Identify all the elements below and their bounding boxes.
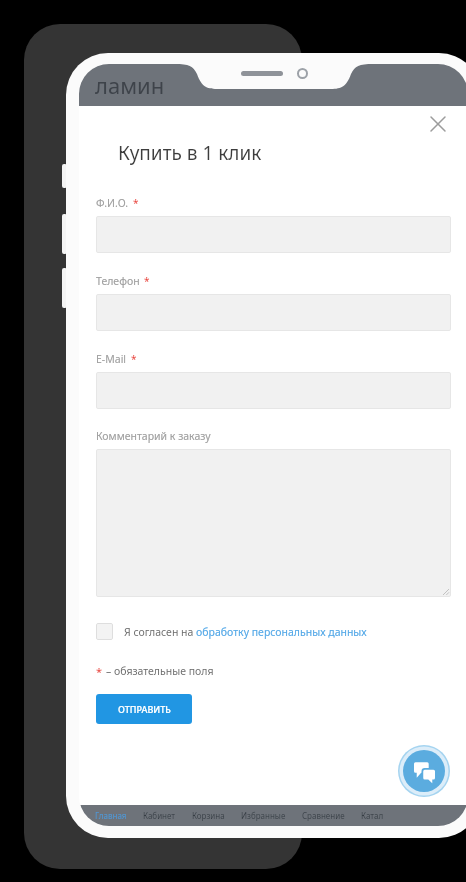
staticText: Корзина xyxy=(192,810,225,821)
button[interactable]: Корзина xyxy=(192,805,225,826)
staticText: E-Mail xyxy=(96,352,127,366)
staticText: Кабинет xyxy=(143,810,176,821)
staticText: Главная xyxy=(95,810,127,821)
staticText: Телефон xyxy=(96,274,140,288)
staticText: Купить в 1 клик xyxy=(118,140,262,166)
staticText: * xyxy=(131,352,137,366)
button[interactable]: Открыть чат xyxy=(398,745,450,797)
staticText: – обязательные поля xyxy=(106,664,214,678)
button[interactable]: Главная xyxy=(95,805,127,826)
staticText: Я согласен на обработку персональных дан… xyxy=(124,625,367,639)
button[interactable]: Сравнение xyxy=(302,805,345,826)
button[interactable]: Я согласен на обработку персональных дан… xyxy=(96,623,451,640)
button[interactable]: Катал xyxy=(361,805,384,826)
staticText: Комментарий к заказу xyxy=(96,429,211,443)
staticText: Ф.И.О. xyxy=(96,196,129,210)
staticText: ламин xyxy=(95,70,165,100)
staticText: * xyxy=(144,274,150,288)
staticText: Катал xyxy=(361,810,384,821)
staticText: * xyxy=(96,664,103,679)
staticText: Избранные xyxy=(241,810,286,821)
button[interactable]: ОТПРАВИТЬ xyxy=(96,694,192,724)
staticText: Сравнение xyxy=(302,810,345,821)
button[interactable]: Избранные xyxy=(241,805,286,826)
button[interactable]: Закрыть xyxy=(425,111,451,137)
staticText: * xyxy=(133,196,139,210)
button[interactable]: Кабинет xyxy=(143,805,176,826)
staticText: ОТПРАВИТЬ xyxy=(118,703,171,715)
